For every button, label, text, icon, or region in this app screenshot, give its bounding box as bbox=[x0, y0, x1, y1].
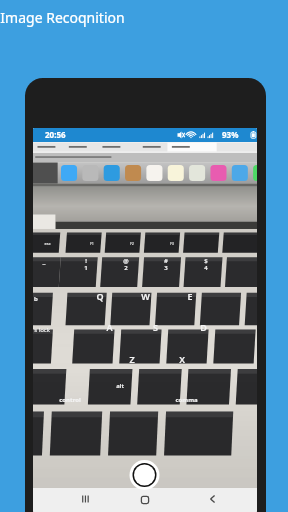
staticText: comma bbox=[175, 396, 198, 404]
staticText: F1 bbox=[90, 242, 94, 246]
staticText: ~ bbox=[42, 260, 46, 268]
staticText: S bbox=[153, 321, 158, 333]
staticText: F2 bbox=[130, 242, 134, 246]
staticText: W bbox=[141, 290, 150, 302]
staticText: E bbox=[187, 290, 193, 302]
staticText: esc bbox=[44, 241, 51, 246]
button[interactable]: Home bbox=[137, 494, 153, 506]
staticText: ! 1 bbox=[84, 257, 88, 272]
staticText: A bbox=[106, 321, 113, 333]
button[interactable]: Back bbox=[203, 493, 219, 505]
staticText: s lock bbox=[34, 326, 50, 334]
staticText: b bbox=[34, 295, 38, 303]
staticText: # 3 bbox=[164, 257, 168, 272]
staticText: Image Recoqnition bbox=[0, 8, 125, 27]
staticText: @ 2 bbox=[123, 257, 129, 272]
staticText: 93% bbox=[222, 129, 239, 140]
staticText: $ 4 bbox=[204, 257, 208, 272]
staticText: F3 bbox=[170, 242, 174, 246]
staticText: 20:56 bbox=[45, 129, 66, 140]
staticText: X bbox=[179, 353, 185, 365]
button[interactable]: Recents bbox=[77, 493, 93, 505]
staticText: Z bbox=[129, 353, 135, 365]
button[interactable]: Take picture bbox=[127, 460, 162, 490]
staticText: alt bbox=[116, 382, 124, 390]
staticText: Q bbox=[96, 290, 104, 302]
staticText: D bbox=[200, 321, 207, 333]
staticText: control bbox=[59, 396, 81, 404]
